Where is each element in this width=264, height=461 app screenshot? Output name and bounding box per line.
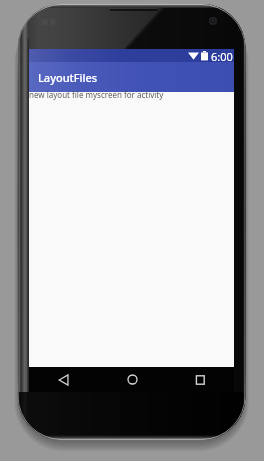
staticText: 6:00	[211, 49, 233, 62]
staticText: LayoutFiles	[38, 70, 98, 85]
button[interactable]: Home	[98, 367, 166, 392]
staticText: new layout file myscreen for activity	[29, 89, 164, 100]
button[interactable]: Back	[29, 367, 98, 392]
button[interactable]: LayoutFiles	[29, 62, 234, 92]
button[interactable]: Recents	[166, 367, 234, 392]
